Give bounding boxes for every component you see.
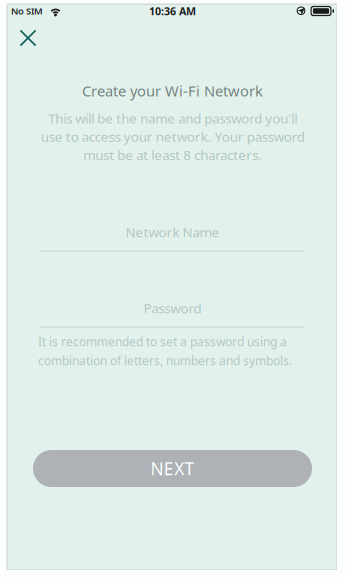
button[interactable]: Network Name [40, 224, 305, 252]
staticText: Network Name [125, 223, 219, 241]
staticText: This will be the name and password you'l… [40, 109, 304, 164]
staticText: No SIM [11, 5, 43, 17]
staticText: It is recommended to set a password usin… [38, 334, 292, 368]
staticText: NEXT [150, 457, 195, 480]
staticText: Password [143, 299, 201, 317]
button[interactable]: NEXT [33, 450, 312, 487]
staticText: Create your Wi-Fi Network [82, 81, 263, 100]
button[interactable]: Password [40, 300, 305, 328]
staticText: 10:36 AM [149, 4, 196, 18]
button[interactable]: Close [6, 22, 50, 54]
